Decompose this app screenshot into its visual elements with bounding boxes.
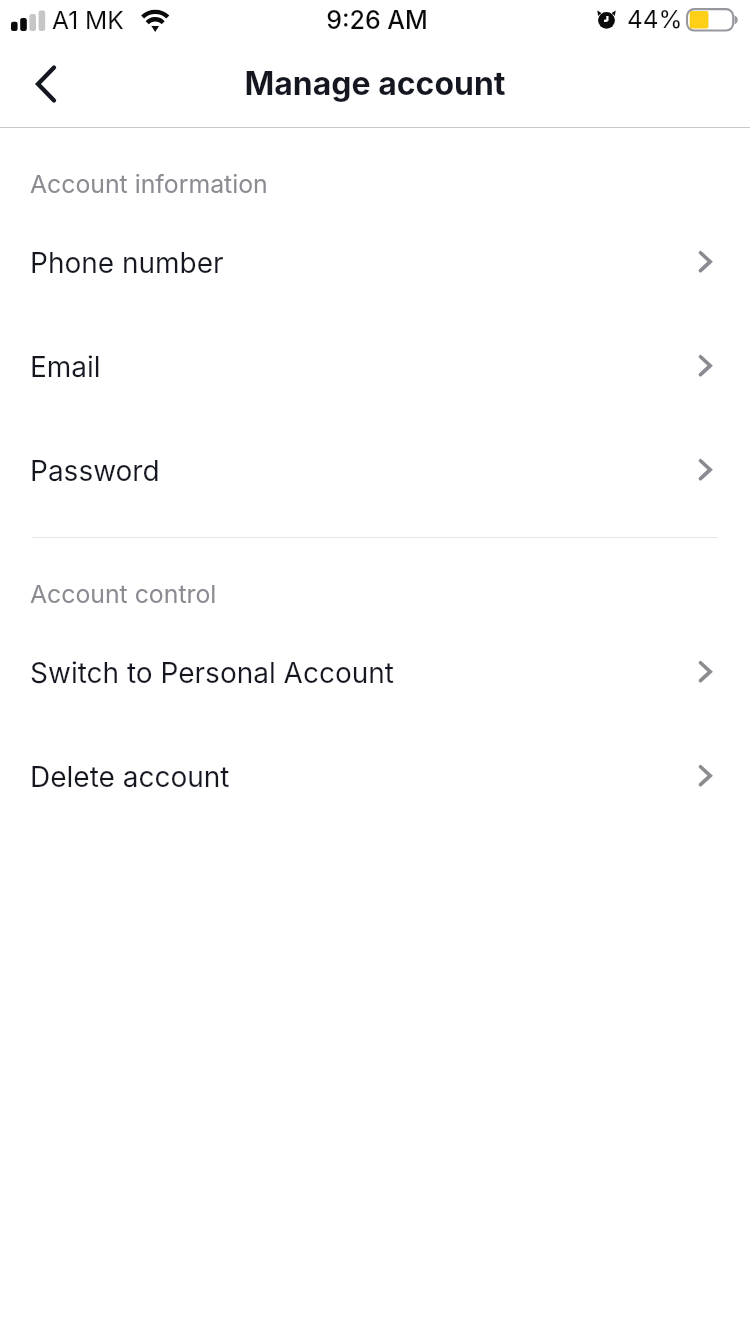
button[interactable]: Email xyxy=(0,304,750,408)
staticText: Delete account xyxy=(30,760,230,794)
staticText: Account information xyxy=(30,169,268,199)
button[interactable]: Phone number xyxy=(0,200,750,304)
staticText: A1 MK xyxy=(52,5,124,35)
staticText: Account control xyxy=(30,579,217,609)
button[interactable]: Password xyxy=(0,408,750,512)
staticText: Password xyxy=(30,454,160,488)
staticText: 9:26 AM xyxy=(2,5,750,35)
button[interactable]: Delete account xyxy=(0,714,750,818)
button[interactable]: Switch to Personal Account xyxy=(0,610,750,714)
staticText: Manage account xyxy=(0,64,750,103)
staticText: 44% xyxy=(627,4,683,34)
staticText: Email xyxy=(30,350,101,384)
button[interactable]: Back xyxy=(13,54,77,116)
staticText: Switch to Personal Account xyxy=(30,656,394,690)
staticText: Phone number xyxy=(30,246,224,280)
